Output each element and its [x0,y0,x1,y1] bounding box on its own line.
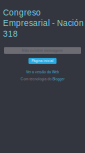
button[interactable]: Ver a versão da Web [26,70,59,74]
button[interactable]: Página inicial [28,58,56,64]
staticText: Blogger [52,77,64,81]
staticText: Ver a versão da Web [26,70,59,74]
staticText: Empresarial - Nación [3,19,84,28]
staticText: Congreso [3,8,41,17]
staticText: Página inicial [31,59,53,63]
button[interactable]: Blogger [52,77,64,81]
staticText: Não existem mensagens [22,49,63,52]
staticText: Com tecnologia do [20,77,52,81]
staticText: 318 [3,29,18,38]
